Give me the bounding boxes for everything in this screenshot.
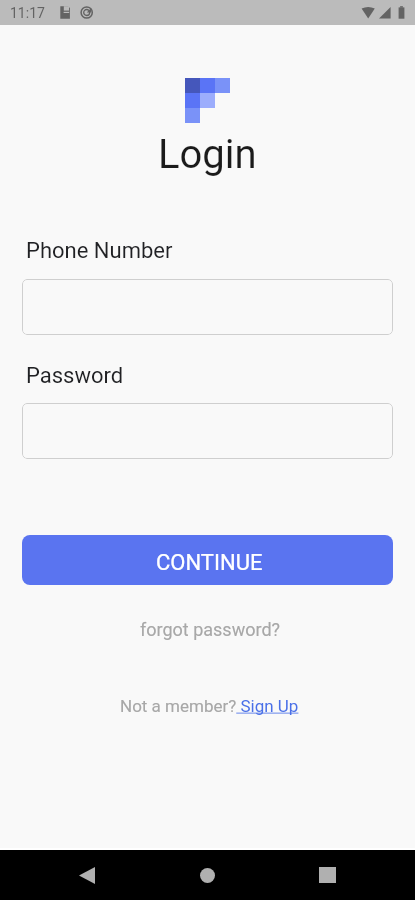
staticText: CONTINUE — [156, 550, 263, 576]
button[interactable]: Back — [57, 850, 117, 900]
staticText: forgot password? — [140, 619, 281, 640]
button[interactable]: forgot password? — [130, 614, 291, 645]
staticText: Password — [26, 363, 124, 389]
staticText: Phone Number — [26, 238, 173, 264]
staticText: Not a member? Sign Up — [120, 696, 299, 716]
button[interactable]: Home — [177, 850, 237, 900]
button[interactable]: Phone Number input — [22, 279, 393, 335]
staticText: 11:17 — [10, 5, 45, 21]
button[interactable]: Password input — [22, 403, 393, 459]
button[interactable]: CONTINUE — [22, 535, 393, 585]
staticText: Login — [158, 131, 257, 178]
button[interactable]: Not a member? Sign Up — [110, 691, 309, 721]
button[interactable]: Recent apps — [297, 850, 357, 900]
